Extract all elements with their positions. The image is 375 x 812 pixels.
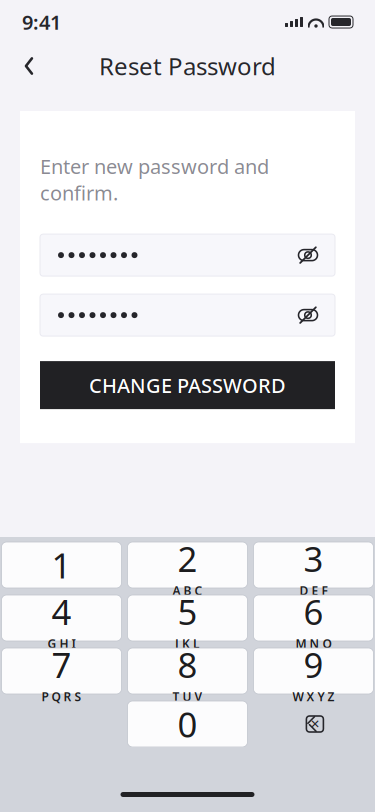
button[interactable]: 6 (253, 595, 373, 641)
staticText: 3 (303, 535, 323, 581)
button[interactable]: 5 (127, 595, 247, 641)
button[interactable]: 8 (127, 648, 247, 694)
staticText: J K L (175, 636, 200, 651)
button[interactable]: Show password (293, 294, 323, 336)
button[interactable]: Back (0, 44, 46, 88)
staticText: 5 (177, 588, 197, 634)
button[interactable]: Delete (253, 701, 373, 747)
button[interactable]: 2 (127, 542, 247, 588)
staticText: 9:41 (22, 9, 61, 35)
staticText: T U V (172, 689, 202, 704)
staticText: W X Y Z (292, 689, 334, 704)
staticText: G H I (47, 636, 75, 651)
staticText: P Q R S (41, 689, 81, 704)
staticText: 4 (51, 588, 71, 634)
button[interactable]: 3 (253, 542, 373, 588)
button[interactable]: 0 (127, 701, 247, 747)
staticText: D E F (299, 583, 327, 598)
button[interactable]: 4 (1, 595, 121, 641)
staticText: M N O (295, 636, 331, 651)
staticText: 2 (177, 535, 197, 581)
staticText: 9 (303, 641, 323, 687)
staticText: 1 (51, 542, 71, 588)
staticText: CHANGE PASSWORD (89, 372, 286, 398)
staticText: Reset Password (99, 50, 276, 82)
staticText: 8 (177, 641, 197, 687)
button[interactable]: CHANGE PASSWORD (40, 361, 335, 409)
staticText: 7 (51, 641, 71, 687)
staticText: 0 (177, 701, 197, 747)
button[interactable]: 7 (1, 648, 121, 694)
staticText: 6 (303, 588, 323, 634)
staticText: A B C (172, 583, 202, 598)
staticText: Enter new password and confirm. (40, 153, 269, 206)
staticText: ✕ (310, 717, 320, 731)
button[interactable]: 9 (253, 648, 373, 694)
button[interactable]: Show password (293, 234, 323, 276)
button[interactable]: 1 (1, 542, 121, 588)
